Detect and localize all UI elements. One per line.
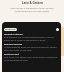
staticText: Delivery window [4,43,23,46]
staticText: When the day is overflowing and you stil… [5,7,59,13]
button[interactable]: Order now [4,28,17,31]
button[interactable]: Profile [56,28,59,31]
staticText: Order now [5,28,16,31]
staticText: Late & Gotten [22,1,43,5]
staticText: Four plates, one dessert and a small bot… [4,56,59,62]
staticText: Slow braised short rib with buttered pol… [4,36,59,42]
staticText: Arriving between seven and nine in the e… [4,46,59,52]
staticText: What you get [4,53,19,56]
staticText: Tonight's kitchen [4,33,23,36]
